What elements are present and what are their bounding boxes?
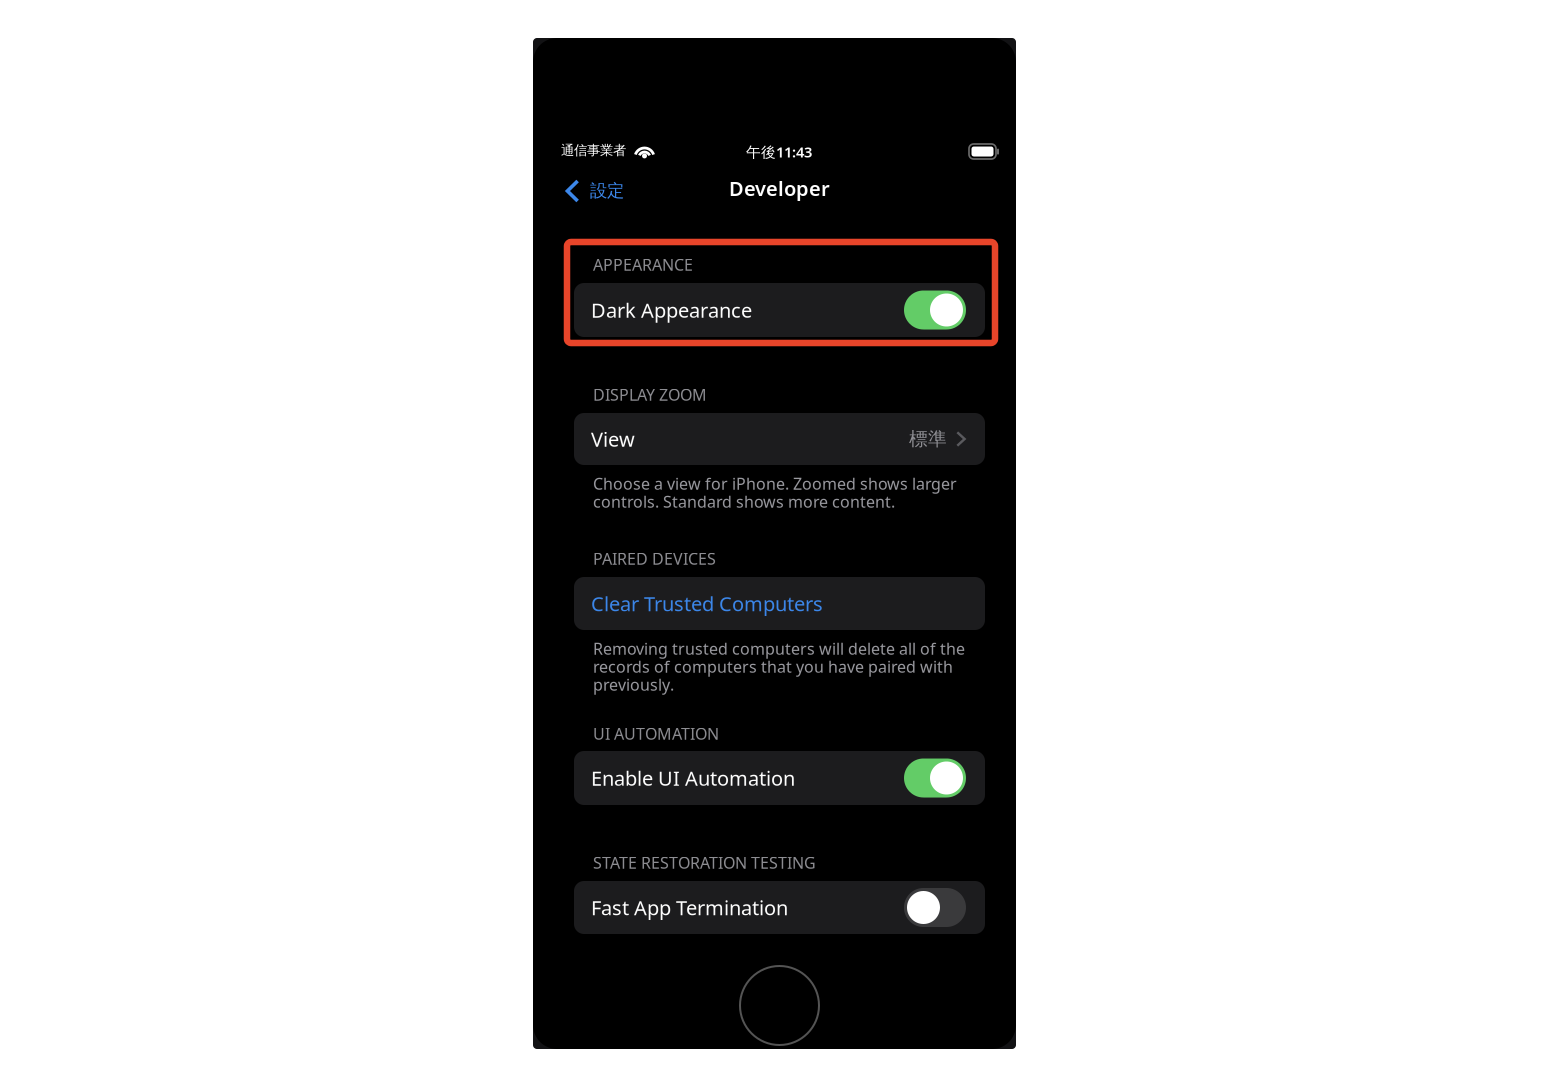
staticText: Fast App Termination — [591, 894, 788, 921]
button[interactable]: View — [574, 413, 985, 465]
staticText: Choose a view for iPhone. Zoomed shows l… — [593, 473, 957, 494]
staticText: Dark Appearance — [591, 297, 752, 323]
button[interactable]: Dark Appearance — [574, 283, 985, 337]
button[interactable]: Enable UI Automation — [574, 751, 985, 805]
staticText: Enable UI Automation — [591, 765, 795, 791]
staticText: UI AUTOMATION — [593, 723, 719, 744]
staticText: PAIRED DEVICES — [593, 548, 716, 569]
staticText: Developer — [729, 175, 830, 202]
staticText: View — [591, 426, 635, 452]
staticText: STATE RESTORATION TESTING — [593, 852, 816, 873]
button[interactable]: Back to Settings — [561, 169, 667, 213]
staticText: APPEARANCE — [593, 254, 693, 275]
staticText: Removing trusted computers will delete a… — [593, 638, 965, 659]
staticText: previously. — [593, 674, 674, 695]
button[interactable]: Fast App Termination — [574, 881, 985, 934]
staticText: 設定 — [590, 180, 624, 201]
staticText: 午後11:43 — [746, 142, 812, 161]
button[interactable]: Clear Trusted Computers — [574, 577, 985, 630]
staticText: 標準 — [909, 427, 947, 450]
staticText: records of computers that you have paire… — [593, 656, 953, 677]
staticText: controls. Standard shows more content. — [593, 491, 895, 512]
staticText: DISPLAY ZOOM — [593, 384, 707, 405]
staticText: Clear Trusted Computers — [591, 590, 823, 617]
staticText: 通信事業者 — [561, 142, 626, 158]
